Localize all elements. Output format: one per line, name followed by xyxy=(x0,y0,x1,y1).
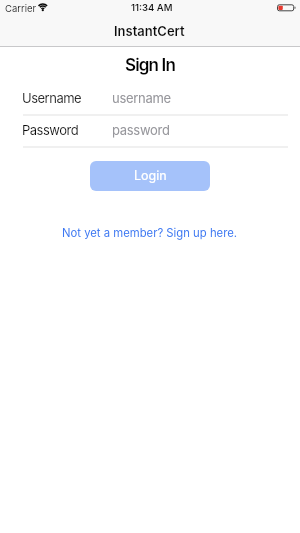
staticText: 11:34 AM xyxy=(131,2,173,13)
staticText: Login xyxy=(134,168,167,183)
staticText: Password xyxy=(22,122,79,138)
staticText: Username xyxy=(22,90,82,106)
staticText: username xyxy=(112,90,171,106)
staticText: password xyxy=(112,122,170,138)
staticText: Not yet a member? Sign up here. xyxy=(62,226,238,240)
staticText: Sign In xyxy=(125,55,175,76)
staticText: Carrier xyxy=(5,3,37,14)
staticText: InstantCert xyxy=(114,23,185,39)
